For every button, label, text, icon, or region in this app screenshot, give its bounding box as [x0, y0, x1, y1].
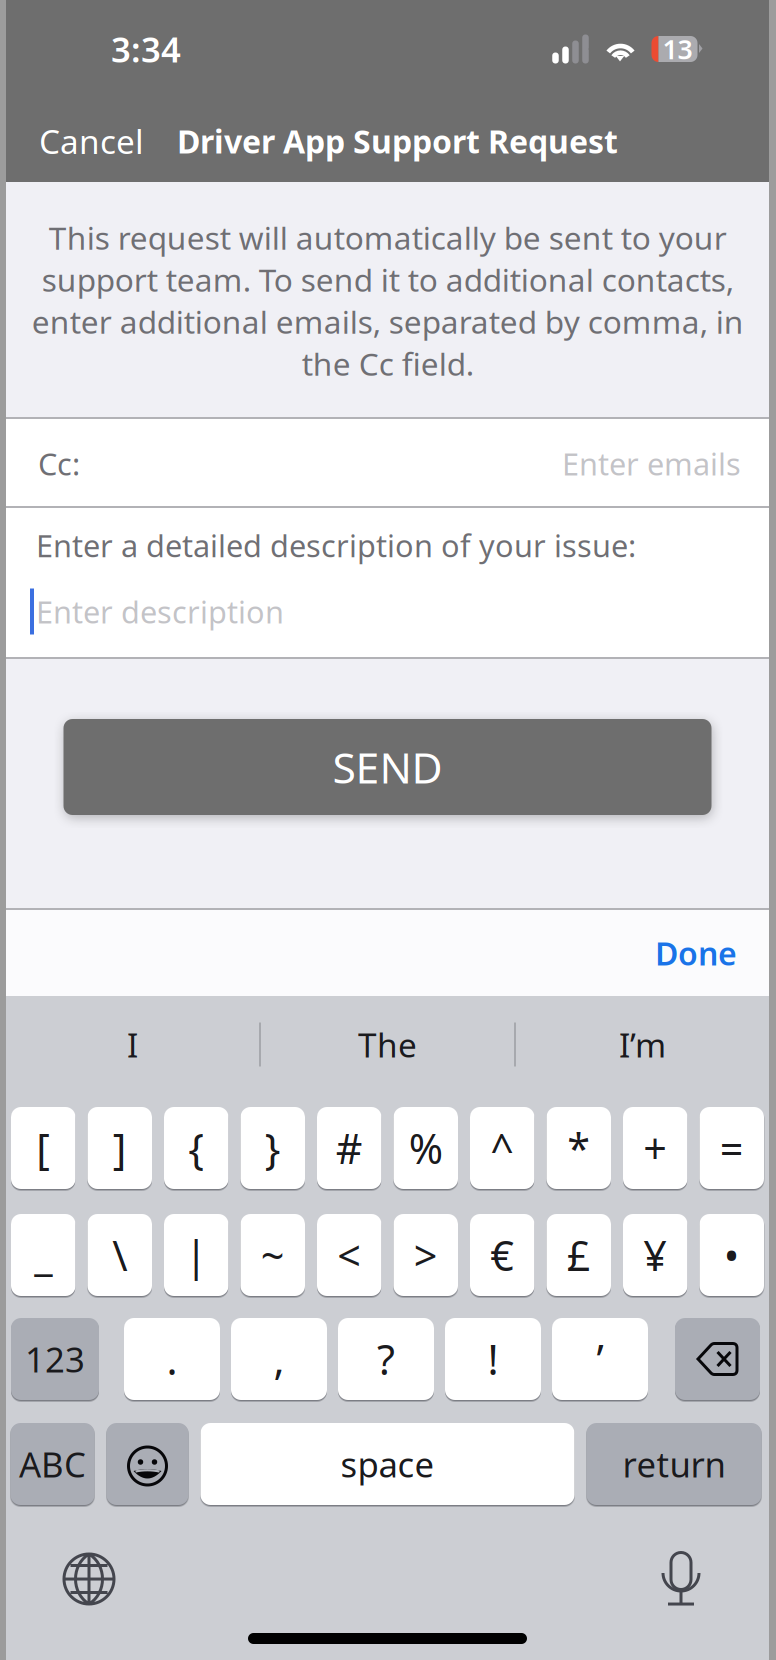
staticText: + [643, 1121, 667, 1175]
staticText: , [273, 1332, 284, 1386]
staticText: < [337, 1228, 361, 1282]
button[interactable]: Dictation [645, 1543, 717, 1615]
button[interactable]: Done [637, 910, 755, 996]
staticText: ABC [19, 1441, 86, 1487]
staticText: _ [34, 1228, 52, 1282]
button[interactable]: = [699, 1107, 764, 1189]
button[interactable]: return [586, 1423, 761, 1505]
button[interactable]: ^ [470, 1107, 534, 1189]
button[interactable]: Enter a detailed description of your iss… [6, 508, 769, 659]
staticText: > [414, 1228, 438, 1282]
button[interactable]: £ [546, 1214, 611, 1296]
staticText: Enter a detailed description of your iss… [36, 525, 636, 566]
staticText: 123 [25, 1336, 85, 1382]
staticText: I’m [619, 1022, 666, 1067]
staticText: Cc: [38, 443, 80, 484]
button[interactable]: + [623, 1107, 687, 1189]
button[interactable]: ¥ [623, 1214, 687, 1296]
staticText: ~ [261, 1228, 285, 1282]
staticText: Done [655, 932, 737, 974]
button[interactable]: < [317, 1214, 381, 1296]
button[interactable]: } [240, 1107, 305, 1189]
staticText: I [127, 1022, 138, 1067]
button[interactable]: Cc: [6, 419, 769, 508]
staticText: ^ [490, 1121, 514, 1175]
button[interactable]: [ [11, 1107, 75, 1189]
button[interactable]: , [231, 1318, 327, 1400]
button[interactable]: SEND [63, 719, 711, 815]
button[interactable]: Cancel [6, 101, 156, 180]
staticText: [ [36, 1121, 50, 1175]
button[interactable]: > [393, 1214, 458, 1296]
button[interactable]: \ [87, 1214, 152, 1296]
button[interactable]: * [546, 1107, 611, 1189]
button[interactable]: _ [11, 1214, 75, 1296]
button[interactable]: € [470, 1214, 534, 1296]
staticText: return [622, 1441, 725, 1487]
staticText: Driver App Support Request [177, 120, 618, 162]
button[interactable]: Change keyboard [53, 1543, 125, 1615]
staticText: £ [567, 1228, 591, 1282]
button[interactable]: I [6, 1000, 259, 1088]
staticText: * [567, 1121, 590, 1175]
button[interactable]: ? [338, 1318, 434, 1400]
button[interactable]: . [124, 1318, 220, 1400]
staticText: Enter description [36, 591, 284, 632]
staticText: ] [113, 1121, 127, 1175]
button[interactable]: % [393, 1107, 458, 1189]
button[interactable]: space [200, 1423, 574, 1505]
staticText: • [724, 1228, 740, 1282]
staticText: € [490, 1228, 514, 1282]
staticText: space [340, 1441, 434, 1487]
staticText: | [185, 1228, 208, 1282]
button[interactable]: ! [445, 1318, 541, 1400]
staticText: { [188, 1121, 204, 1175]
staticText: } [265, 1121, 281, 1175]
staticText: = [720, 1121, 744, 1175]
staticText: 3:34 [111, 26, 181, 72]
button[interactable]: # [317, 1107, 381, 1189]
button[interactable]: I’m [516, 1000, 769, 1088]
staticText: SEND [332, 739, 442, 795]
button[interactable]: 123 [11, 1318, 99, 1400]
button[interactable]: ABC [10, 1423, 94, 1505]
staticText: \ [112, 1228, 127, 1282]
staticText: 13 [662, 31, 692, 67]
staticText: ’ [596, 1332, 603, 1386]
staticText: # [336, 1121, 363, 1175]
staticText: Enter emails [562, 443, 741, 484]
staticText: % [409, 1121, 443, 1175]
staticText: . [166, 1332, 177, 1386]
button[interactable]: • [699, 1214, 764, 1296]
staticText: The [358, 1022, 417, 1067]
staticText: ¥ [643, 1228, 667, 1282]
button[interactable]: Emoji [106, 1423, 188, 1505]
staticText: ! [487, 1332, 498, 1386]
button[interactable]: ] [87, 1107, 152, 1189]
button[interactable]: ~ [240, 1214, 305, 1296]
button[interactable]: Delete [675, 1318, 760, 1400]
button[interactable]: The [261, 1000, 514, 1088]
button[interactable]: { [164, 1107, 228, 1189]
staticText: ? [377, 1332, 395, 1386]
staticText: Cancel [39, 119, 144, 163]
button[interactable]: | [164, 1214, 228, 1296]
staticText: This request will automatically be sent … [31, 217, 743, 384]
button[interactable]: ’ [552, 1318, 648, 1400]
